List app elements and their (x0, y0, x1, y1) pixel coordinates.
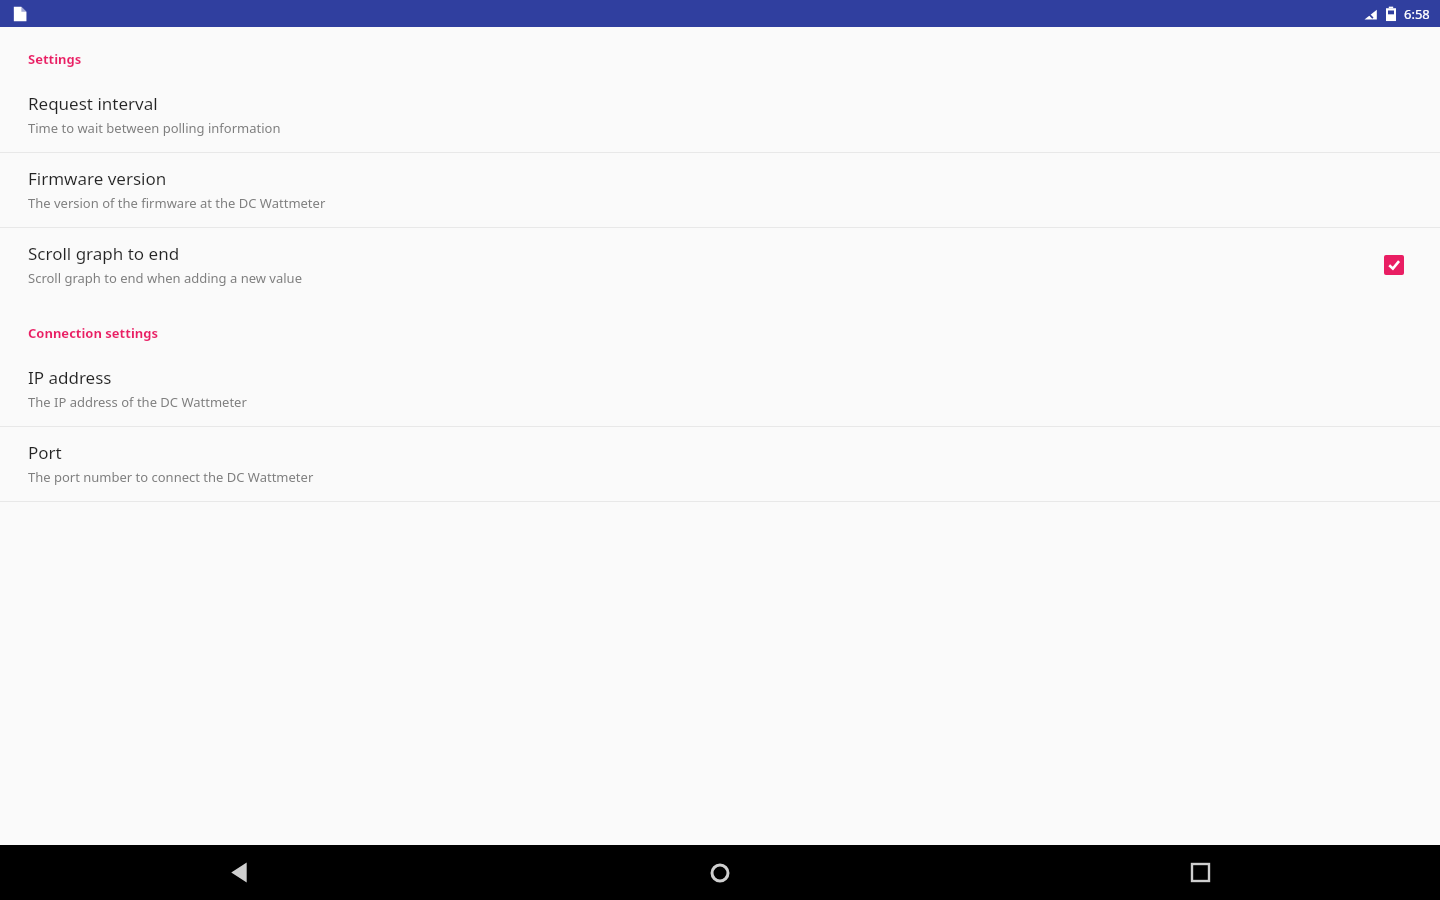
staticText: The IP address of the DC Wattmeter (28, 393, 247, 411)
staticText: Time to wait between polling information (28, 119, 281, 137)
button[interactable]: Home (480, 845, 960, 900)
staticText: Scroll graph to end when adding a new va… (28, 269, 302, 287)
button[interactable]: Port (0, 427, 1440, 501)
staticText: Connection settings (28, 324, 158, 342)
staticText: IP address (28, 366, 112, 389)
staticText: 6:58 (1404, 5, 1430, 23)
button[interactable]: Recents (960, 845, 1440, 900)
button[interactable]: IP address (0, 352, 1440, 426)
staticText: The version of the firmware at the DC Wa… (28, 194, 326, 212)
staticText: Scroll graph to end (28, 242, 180, 265)
staticText: Request interval (28, 92, 158, 115)
staticText: The port number to connect the DC Wattme… (28, 468, 314, 486)
button[interactable]: Scroll graph to end (0, 228, 1440, 302)
button[interactable]: Request interval (0, 78, 1440, 152)
button[interactable]: Firmware version (0, 153, 1440, 227)
staticText: Settings (28, 50, 82, 68)
button[interactable]: Back (0, 845, 480, 900)
staticText: Firmware version (28, 167, 167, 190)
staticText: Port (28, 441, 62, 464)
button[interactable]: Scroll graph to end, checked (1376, 247, 1412, 283)
